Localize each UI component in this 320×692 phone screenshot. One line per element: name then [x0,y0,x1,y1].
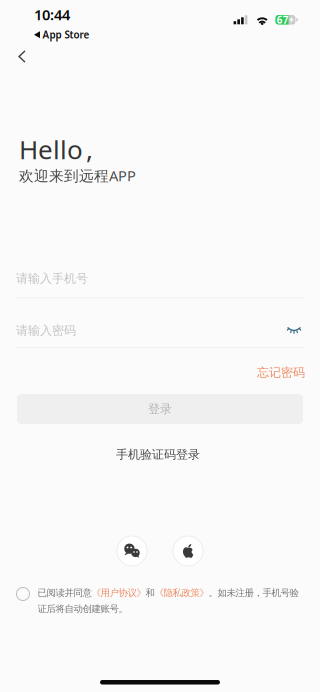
staticText: 证后将自动创建账号。 [37,603,127,615]
staticText: 已阅读并同意 [37,587,91,599]
button[interactable]: 忘记密码 [253,362,309,383]
staticText: 和 [145,587,154,599]
staticText: 请输入手机号 [16,271,88,286]
staticText: 《用户协议》 [91,587,145,599]
button[interactable]: Agree to terms [16,587,37,600]
staticText: 登录 [148,401,172,416]
button[interactable]: Sign in with WeChat [117,536,147,566]
staticText: Hello , [19,131,93,167]
button[interactable]: 登录 [17,394,303,424]
button[interactable]: Show password [287,324,305,337]
staticText: 欢迎来到远程APP [19,165,136,185]
staticText: 67 [277,13,289,26]
button[interactable]: 手机验证码登录 [108,443,208,466]
button[interactable]: Back [5,41,39,71]
staticText: 忘记密码 [257,365,305,380]
staticText: App Store [43,28,90,41]
staticText: 。如未注册，手机号验 [208,587,298,599]
staticText: 10:44 [34,4,70,24]
button[interactable]: Sign in with Apple [173,536,203,566]
staticText: 请输入密码 [16,323,76,338]
staticText: 《隐私政策》 [154,587,208,599]
staticText: 手机验证码登录 [116,447,200,462]
